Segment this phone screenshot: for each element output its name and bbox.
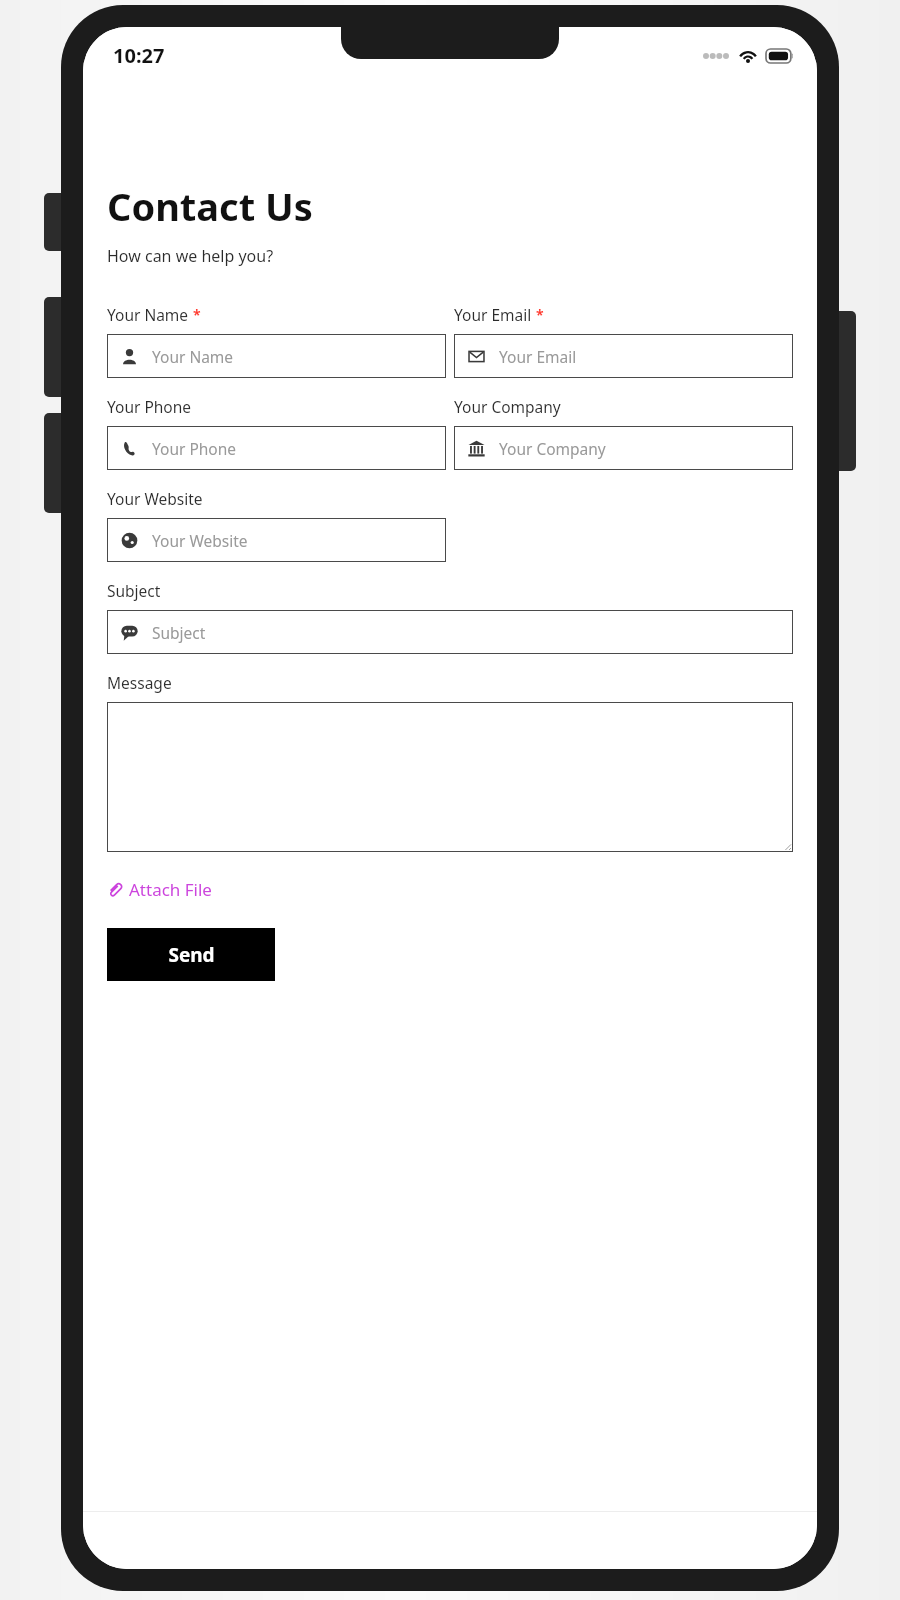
button[interactable] xyxy=(107,702,793,852)
button[interactable]: Your Email xyxy=(454,334,793,378)
staticText: Your Phone xyxy=(107,396,192,417)
button[interactable]: Your Phone xyxy=(107,426,446,470)
button[interactable]: Subject xyxy=(107,610,793,654)
staticText: Your Email xyxy=(454,304,532,325)
staticText: Your Name xyxy=(152,346,234,367)
staticText: Your Company xyxy=(454,396,561,417)
staticText: How can we help you? xyxy=(107,245,274,267)
staticText: 10:27 xyxy=(113,42,165,69)
staticText: Subject xyxy=(152,622,206,643)
staticText: Your Name xyxy=(107,304,189,325)
staticText: Your Company xyxy=(499,438,606,459)
staticText: Your Website xyxy=(107,488,203,509)
button[interactable]: Send xyxy=(107,928,275,981)
staticText: Contact Us xyxy=(107,180,313,232)
button[interactable]: Your Name xyxy=(107,334,446,378)
staticText: * xyxy=(193,305,201,324)
staticText: Your Phone xyxy=(152,438,237,459)
button[interactable]: Your Company xyxy=(454,426,793,470)
staticText: Send xyxy=(168,942,215,968)
button[interactable]: Your Website xyxy=(107,518,446,562)
staticText: Your Email xyxy=(499,346,577,367)
staticText: Message xyxy=(107,672,172,693)
staticText: * xyxy=(536,305,544,324)
staticText: Your Website xyxy=(152,530,248,551)
staticText: Attach File xyxy=(129,878,212,901)
staticText: Subject xyxy=(107,580,161,601)
button[interactable]: Attach File xyxy=(107,876,212,903)
